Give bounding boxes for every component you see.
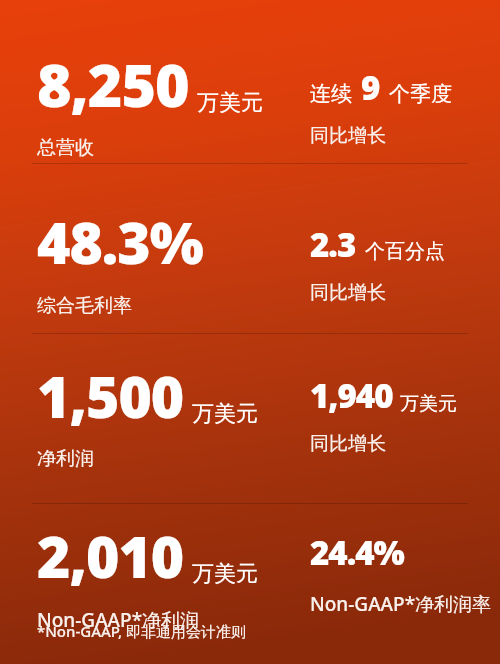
button[interactable]: 2,010 [37,517,258,633]
button[interactable]: 8,250 [37,44,263,160]
staticText: 总营收 [37,136,94,160]
staticText: 9 [361,65,380,110]
staticText: 2.3 [310,222,356,267]
button[interactable]: 24.4% [310,530,492,617]
staticText: 综合毛利率 [37,294,132,318]
staticText: 万美元 [197,89,263,117]
staticText: 同比增长 [310,124,386,148]
staticText: Non-GAAP*净利润 [37,607,200,633]
staticText: 个季度 [389,81,452,107]
staticText: 万美元 [192,400,258,428]
staticText: 24.4% [310,530,404,575]
staticText: Non-GAAP*净利润率 [310,591,492,617]
staticText: 2,010 [37,517,184,595]
staticText: 1,500 [37,357,184,435]
staticText: 1,940 [310,373,393,418]
staticText: 净利润 [37,447,94,471]
button[interactable]: 1,940 [310,373,457,456]
staticText: 8,250 [37,44,189,124]
staticText: 万美元 [400,392,457,416]
staticText: 连续 [310,81,352,107]
staticText: 同比增长 [310,432,386,456]
staticText: *Non-GAAP, 即非通用会计准则 [37,621,246,641]
button[interactable]: 2.3 [310,222,445,305]
staticText: 48.3% [37,203,203,281]
staticText: 同比增长 [310,281,386,305]
button[interactable]: 48.3% [37,203,203,318]
button[interactable]: 1,500 [37,357,258,471]
staticText: 个百分点 [365,239,445,264]
staticText: 万美元 [192,560,258,588]
button[interactable]: 连续 [310,65,452,148]
